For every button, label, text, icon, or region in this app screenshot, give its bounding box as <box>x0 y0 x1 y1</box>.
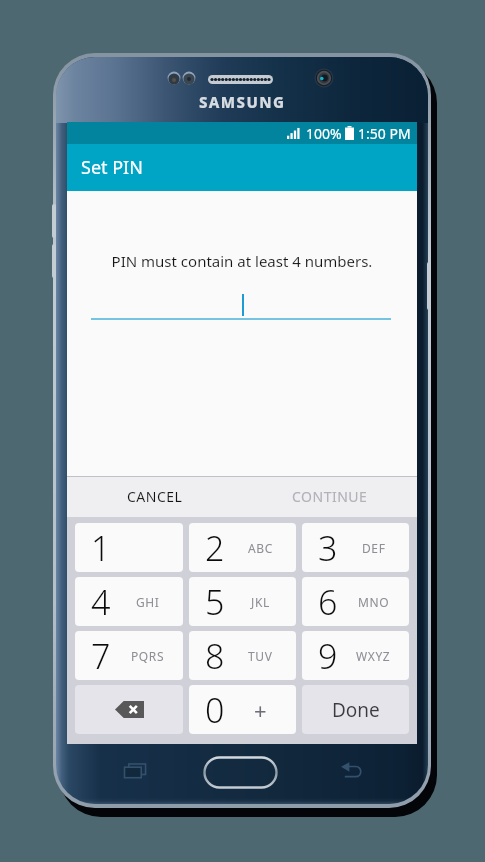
button[interactable]: 2 <box>189 523 296 572</box>
staticText: MNO <box>358 594 390 610</box>
staticText: Set PIN <box>81 155 143 180</box>
staticText: 2 <box>205 525 225 571</box>
button[interactable]: 7 <box>75 631 183 680</box>
staticText: GHI <box>136 594 160 610</box>
staticText: WXYZ <box>356 648 391 664</box>
button[interactable]: CONTINUE <box>242 476 417 517</box>
staticText: 0 <box>205 687 225 733</box>
button[interactable]: 6 <box>302 577 409 626</box>
staticText: SAMSUNG <box>199 92 286 110</box>
staticText: 100% <box>306 124 342 143</box>
button[interactable]: 4 <box>75 577 183 626</box>
button[interactable]: Recents <box>113 748 157 792</box>
button[interactable]: Home <box>203 756 278 789</box>
button[interactable]: Back <box>329 748 373 792</box>
staticText: 4 <box>91 579 111 625</box>
button[interactable]: CANCEL <box>67 476 242 517</box>
button[interactable]: 0 <box>189 685 296 734</box>
staticText: JKL <box>251 594 270 610</box>
staticText: 5 <box>205 579 225 625</box>
staticText: DEF <box>362 540 386 556</box>
staticText: 1:50 PM <box>358 124 411 143</box>
button[interactable]: 1 <box>75 523 183 572</box>
staticText: PIN must contain at least 4 numbers. <box>67 251 417 271</box>
staticText: Done <box>332 697 380 723</box>
button[interactable]: 5 <box>189 577 296 626</box>
button[interactable]: Backspace <box>75 685 183 734</box>
staticText: 1 <box>91 525 111 571</box>
staticText: 8 <box>205 633 225 679</box>
button[interactable]: 9 <box>302 631 409 680</box>
staticText: PQRS <box>131 648 165 664</box>
button[interactable]: 8 <box>189 631 296 680</box>
button[interactable]: Done <box>302 685 409 734</box>
staticText: + <box>254 695 268 725</box>
staticText: 6 <box>318 579 338 625</box>
staticText: CANCEL <box>127 487 183 506</box>
staticText: ABC <box>248 540 273 556</box>
button[interactable]: 3 <box>302 523 409 572</box>
staticText: 7 <box>91 633 111 679</box>
staticText: TUV <box>248 648 273 664</box>
staticText: 3 <box>318 525 338 571</box>
staticText: 9 <box>318 633 338 679</box>
staticText: CONTINUE <box>292 487 368 506</box>
